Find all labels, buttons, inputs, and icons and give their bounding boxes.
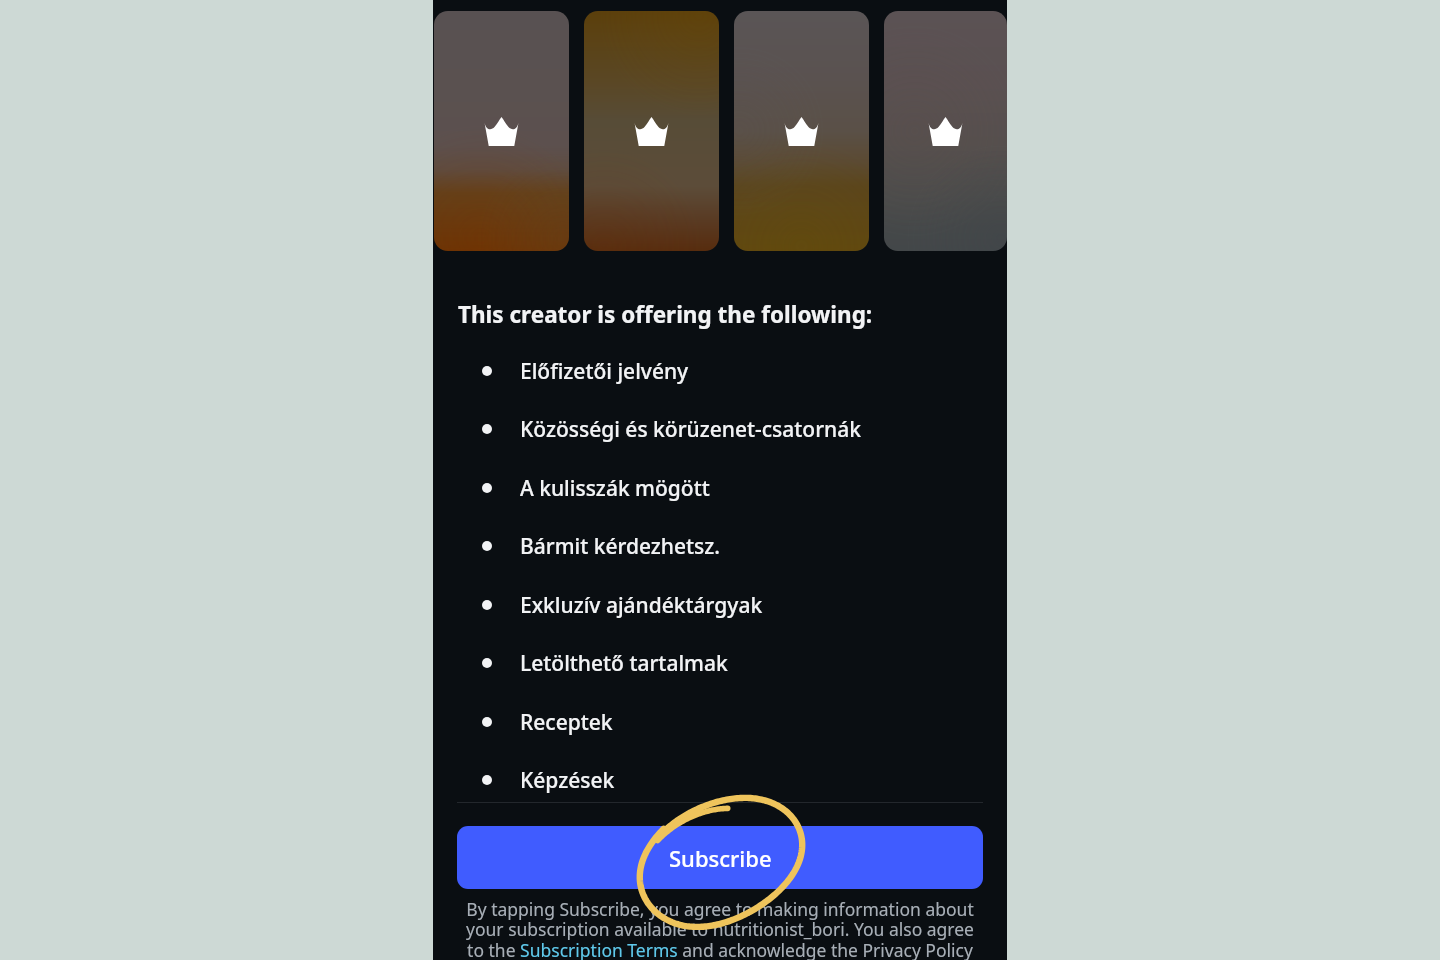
button[interactable]: Képzések <box>457 751 983 809</box>
button[interactable]: Előfizetői jelvény <box>457 342 983 400</box>
staticText: Képzések <box>520 766 615 795</box>
staticText: Exkluzív ajándéktárgyak <box>520 591 763 620</box>
button[interactable]: Receptek <box>457 693 983 751</box>
staticText: Bármit kérdezhetsz. <box>520 532 721 561</box>
button[interactable]: Bármit kérdezhetsz. <box>457 517 983 575</box>
staticText: Közösségi és körüzenet-csatornák <box>520 415 861 444</box>
staticText: By tapping Subscribe, you agree to makin… <box>456 897 984 960</box>
button[interactable]: Subscriber perk preview <box>584 11 719 251</box>
button[interactable]: Letölthető tartalmak <box>457 634 983 692</box>
staticText: This creator is offering the following: <box>458 299 873 330</box>
staticText: Letölthető tartalmak <box>520 649 728 678</box>
button[interactable]: Exkluzív ajándéktárgyak <box>457 576 983 634</box>
button[interactable]: Subscriber perk preview <box>434 11 569 251</box>
button[interactable]: Közösségi és körüzenet-csatornák <box>457 400 983 458</box>
button[interactable]: Subscribe <box>457 826 983 889</box>
staticText: Receptek <box>520 708 613 737</box>
button[interactable]: Subscriber perk preview <box>884 11 1007 251</box>
staticText: Előfizetői jelvény <box>520 357 689 386</box>
staticText: A kulisszák mögött <box>520 474 710 503</box>
button[interactable]: Subscriber perk preview <box>734 11 869 251</box>
button[interactable]: A kulisszák mögött <box>457 459 983 517</box>
staticText: Subscribe <box>669 843 772 873</box>
